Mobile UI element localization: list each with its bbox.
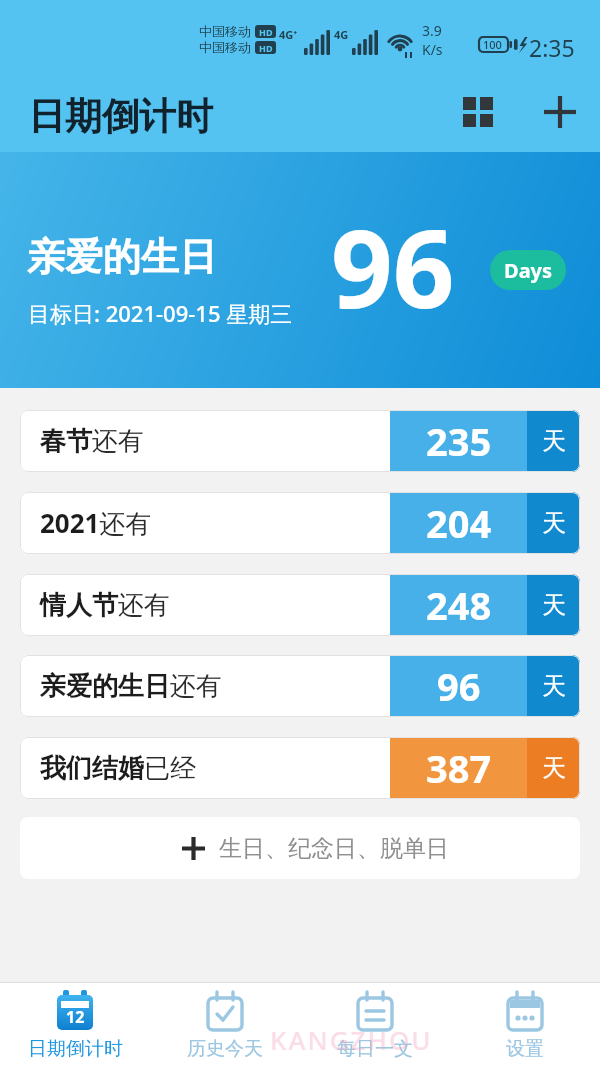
staticText: 2021还有 xyxy=(40,505,390,541)
staticText: 生日、纪念日、脱单日 xyxy=(219,834,449,863)
button[interactable]: 亲爱的生日 xyxy=(0,152,600,388)
staticText: 情人节还有 xyxy=(40,589,390,622)
button[interactable]: 情人节还有 xyxy=(20,574,580,636)
button[interactable]: 亲爱的生日还有 xyxy=(20,655,580,717)
button[interactable]: 每日一文 xyxy=(300,983,450,1067)
staticText: 每日一文 xyxy=(337,1037,413,1061)
staticText: 天 xyxy=(542,753,566,783)
staticText: 12 xyxy=(66,1006,85,1028)
staticText: 天 xyxy=(542,590,566,620)
button[interactable]: 历史今天 xyxy=(150,983,300,1067)
staticText: 日期倒计时 xyxy=(28,93,213,140)
button[interactable]: 设置 xyxy=(450,983,600,1067)
staticText: Days xyxy=(504,257,553,284)
staticText: 3.9 xyxy=(422,21,442,40)
button[interactable]: 生日、纪念日、脱单日 xyxy=(20,817,580,879)
staticText: 235 xyxy=(426,415,492,467)
staticText: 100 xyxy=(483,37,502,52)
staticText: 天 xyxy=(542,508,566,538)
staticText: 4G xyxy=(334,27,349,42)
staticText: 日期倒计时 xyxy=(28,1037,123,1061)
staticText: KANGZHOU xyxy=(270,1022,433,1057)
staticText: 天 xyxy=(542,426,566,456)
button[interactable] xyxy=(452,86,504,138)
staticText: 4G⁺ xyxy=(279,27,298,42)
button[interactable] xyxy=(534,86,586,138)
button[interactable]: 2021还有 xyxy=(20,492,580,554)
staticText: 亲爱的生日 xyxy=(27,233,217,281)
staticText: 204 xyxy=(426,497,492,549)
staticText: 亲爱的生日还有 xyxy=(40,670,390,703)
staticText: 我们结婚已经 xyxy=(40,752,390,785)
staticText: 目标日: 2021-09-15 星期三 xyxy=(28,298,293,328)
staticText: HD xyxy=(259,42,273,54)
staticText: 天 xyxy=(542,671,566,701)
staticText: K/s xyxy=(422,40,443,59)
staticText: 中国移动 xyxy=(199,23,251,39)
staticText: 387 xyxy=(426,742,492,794)
staticText: 2:35 xyxy=(529,32,575,63)
staticText: 历史今天 xyxy=(187,1037,263,1061)
button[interactable]: 我们结婚已经 xyxy=(20,737,580,799)
staticText: 设置 xyxy=(506,1037,544,1061)
button[interactable]: 春节还有 xyxy=(20,410,580,472)
staticText: 中国移动 xyxy=(199,39,251,55)
staticText: 248 xyxy=(426,579,492,631)
staticText: 96 xyxy=(331,193,455,340)
staticText: HD xyxy=(259,26,273,38)
staticText: 春节还有 xyxy=(40,425,390,458)
button[interactable]: 12 xyxy=(0,983,150,1067)
staticText: 96 xyxy=(437,660,481,712)
